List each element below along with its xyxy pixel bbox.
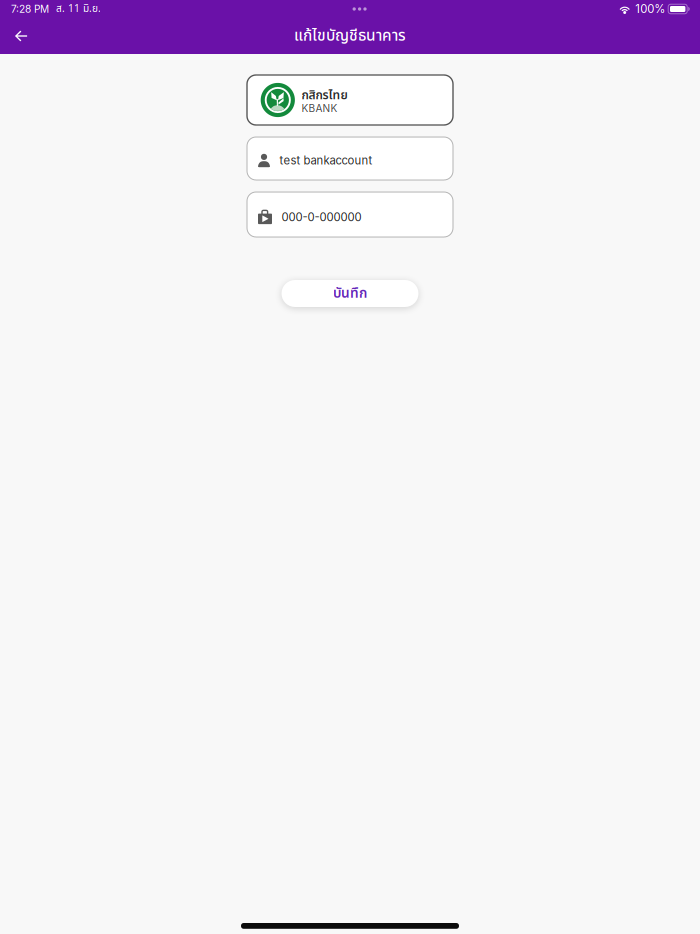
staticText: 000-0-000000 — [281, 210, 361, 224]
staticText: บันทึก — [333, 283, 367, 304]
button[interactable]: Back — [0, 18, 42, 54]
staticText: KBANK — [301, 102, 337, 114]
staticText: 100% — [635, 2, 665, 16]
button[interactable]: test bankaccount — [247, 137, 453, 180]
staticText: ส. 11 มิ.ย. — [56, 1, 101, 17]
button[interactable]: กสิกรไทย — [247, 75, 453, 125]
staticText: แก้ไขบัญชีธนาคาร — [294, 24, 406, 48]
staticText: 7:28 PM — [11, 3, 49, 15]
staticText: กสิกรไทย — [301, 87, 347, 105]
button[interactable]: 000-0-000000 — [247, 192, 453, 237]
button[interactable]: บันทึก — [281, 280, 418, 307]
staticText: test bankaccount — [279, 154, 372, 167]
